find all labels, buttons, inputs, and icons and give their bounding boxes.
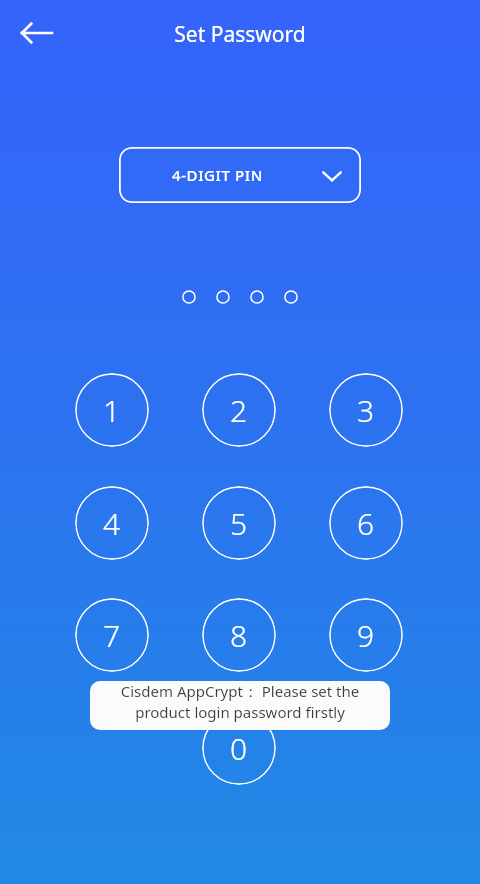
button[interactable]: 3	[329, 373, 403, 447]
staticText: 4-DIGIT PIN	[172, 165, 263, 185]
staticText: 9	[357, 615, 375, 656]
button[interactable]: Back	[9, 5, 65, 61]
button[interactable]: 5	[202, 486, 276, 560]
button[interactable]: 4-DIGIT PIN	[119, 147, 361, 203]
staticText: Set Password	[174, 20, 306, 49]
button[interactable]: 8	[202, 598, 276, 672]
button[interactable]: 1	[75, 373, 149, 447]
button[interactable]: 4	[75, 486, 149, 560]
staticText: 3	[357, 390, 375, 431]
button[interactable]: 0	[202, 711, 276, 785]
staticText: 6	[357, 503, 375, 544]
staticText: 8	[230, 615, 248, 656]
staticText: 0	[230, 728, 248, 769]
staticText: 7	[103, 615, 121, 656]
staticText: 5	[230, 503, 248, 544]
staticText: 2	[230, 390, 248, 431]
button[interactable]: 6	[329, 486, 403, 560]
button[interactable]: 7	[75, 598, 149, 672]
staticText: 4	[103, 503, 121, 544]
button[interactable]: 2	[202, 373, 276, 447]
button[interactable]: 9	[329, 598, 403, 672]
staticText: Cisdem AppCrypt： Please set the product …	[97, 681, 383, 730]
staticText: 1	[103, 390, 121, 431]
